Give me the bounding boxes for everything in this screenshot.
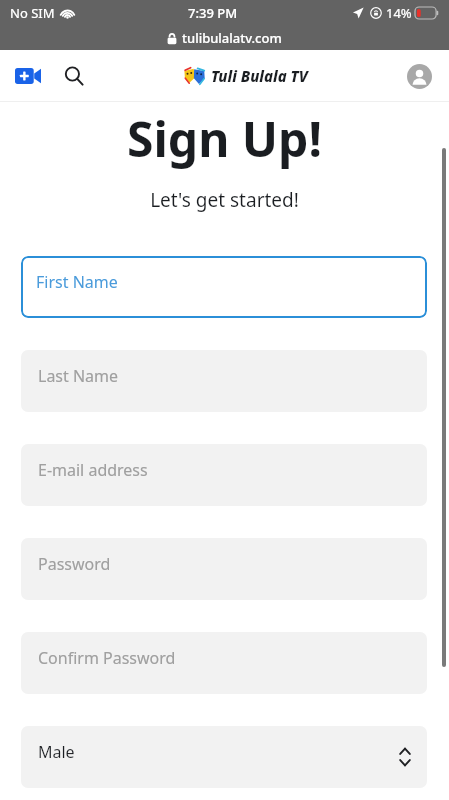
staticText: 7:39 PM (188, 4, 238, 22)
staticText: Confirm Password (38, 647, 176, 669)
button[interactable]: E-mail address (21, 444, 427, 506)
staticText: Let's get started! (0, 187, 449, 213)
staticText: Sign Up! (0, 106, 449, 171)
button[interactable]: Search (54, 56, 94, 96)
button[interactable]: First Name (21, 256, 427, 318)
staticText: Male (38, 741, 75, 763)
staticText: Last Name (38, 365, 119, 387)
button[interactable]: Confirm Password (21, 632, 427, 694)
button[interactable]: Password (21, 538, 427, 600)
button[interactable]: Tuli Bulala TV (184, 66, 308, 86)
staticText: First Name (36, 271, 118, 293)
staticText: No SIM (10, 4, 55, 22)
staticText: E-mail address (38, 459, 148, 481)
staticText: 14% (386, 4, 412, 22)
staticText: Password (38, 553, 111, 575)
button[interactable]: Start a video (8, 56, 48, 96)
button[interactable]: Last Name (21, 350, 427, 412)
staticText: tulibulalatv.com (182, 29, 282, 47)
button[interactable]: Male (21, 726, 427, 788)
staticText: Tuli Bulala TV (211, 66, 308, 86)
button[interactable]: Account (399, 56, 439, 96)
